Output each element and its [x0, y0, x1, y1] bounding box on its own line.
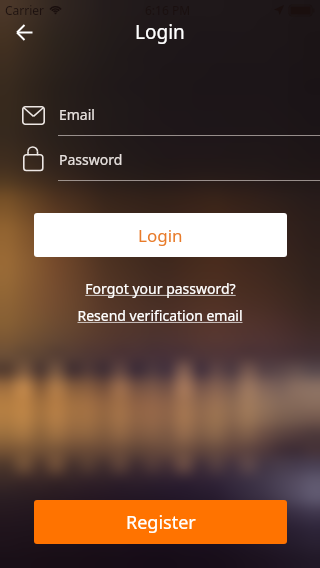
staticText: 6:16 PM [145, 2, 191, 18]
button[interactable]: Register [34, 500, 287, 544]
staticText: Carrier [5, 2, 45, 18]
staticText: Login [135, 19, 185, 45]
staticText: Register [126, 510, 196, 535]
staticText: Resend verification email [77, 306, 243, 325]
staticText: Forgot your password? [85, 279, 236, 298]
button[interactable]: Forgot your password? [0, 279, 320, 298]
button[interactable]: Back [2, 10, 46, 54]
button[interactable]: Resend verification email [0, 306, 320, 325]
staticText: Password [59, 150, 123, 169]
staticText: Email [59, 105, 95, 124]
button[interactable]: Login [34, 213, 287, 257]
staticText: Login [138, 224, 183, 247]
